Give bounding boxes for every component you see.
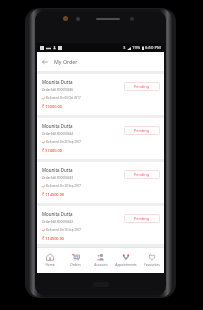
staticText: Appointments: [115, 263, 137, 267]
button[interactable]: Home: [37, 247, 62, 273]
button[interactable]: Pending: [124, 214, 160, 223]
staticText: OrderId# X00000433: [42, 176, 74, 180]
button[interactable]: Mounita Dutta: [37, 74, 164, 118]
staticText: 19%: [132, 45, 141, 51]
staticText: ₹ 114500.00: [42, 236, 65, 241]
staticText: Delivered On 03 Oct 2017: [46, 96, 81, 100]
staticText: Delivered On 15 Sep 2017: [46, 228, 81, 232]
button[interactable]: Mounita Dutta: [37, 118, 164, 162]
button[interactable]: Back: [39, 56, 50, 67]
staticText: Mounita Dutta: [42, 79, 73, 85]
staticText: Delivered On 25 Sep 2017: [46, 140, 81, 144]
staticText: ₹ 57400.00: [42, 148, 62, 153]
button[interactable]: Mounita Dutta: [37, 206, 164, 247]
button[interactable]: Pending: [124, 126, 160, 135]
button[interactable]: Pending: [124, 170, 160, 179]
staticText: 3: [123, 45, 126, 51]
staticText: Pending: [134, 172, 150, 177]
staticText: Delivered On 20 Sep 2017: [46, 184, 81, 188]
staticText: Pending: [134, 84, 150, 89]
staticText: ₹ 114500.00: [42, 192, 65, 197]
staticText: Favourites: [144, 263, 160, 267]
staticText: Orders: [70, 263, 81, 267]
staticText: OrderId# X00000432: [42, 220, 74, 224]
button[interactable]: Accounts: [88, 247, 113, 273]
button[interactable]: Orders: [63, 247, 88, 273]
staticText: 6:50 PM: [145, 45, 161, 51]
staticText: Mounita Dutta: [42, 123, 73, 129]
staticText: Accounts: [94, 263, 108, 267]
staticText: My Order: [54, 58, 78, 65]
button[interactable]: Pending: [124, 82, 160, 91]
staticText: ₹ 15000.00: [42, 104, 62, 109]
button[interactable]: Favourites: [139, 247, 164, 273]
button[interactable]: Appointments: [113, 247, 138, 273]
staticText: Home: [45, 263, 55, 267]
staticText: OrderId# X00000434: [42, 132, 74, 136]
button[interactable]: Mounita Dutta: [37, 162, 164, 206]
staticText: OrderId# X00000436: [42, 88, 74, 92]
staticText: Mounita Dutta: [42, 167, 73, 173]
staticText: Pending: [134, 128, 150, 133]
staticText: Pending: [134, 216, 150, 221]
staticText: Mounita Dutta: [42, 211, 73, 217]
